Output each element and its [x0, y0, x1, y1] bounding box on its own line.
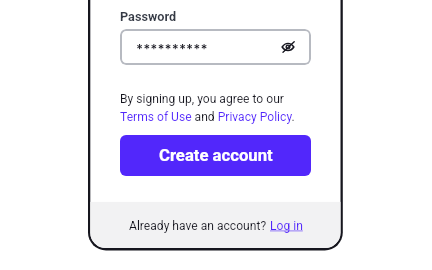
button[interactable]: Create account — [120, 135, 311, 176]
button[interactable]: ********** — [120, 29, 311, 65]
staticText: Terms of Use and Privacy Policy. — [120, 110, 295, 124]
staticText: Password — [120, 9, 177, 24]
staticText: By signing up, you agree to our — [120, 92, 284, 106]
button[interactable]: Log in — [270, 219, 303, 233]
staticText: Already have an account? — [129, 219, 270, 233]
staticText: Log in — [270, 219, 303, 233]
button[interactable]: Hide password — [277, 36, 299, 58]
staticText: ********** — [136, 42, 208, 57]
staticText: Create account — [159, 146, 273, 166]
